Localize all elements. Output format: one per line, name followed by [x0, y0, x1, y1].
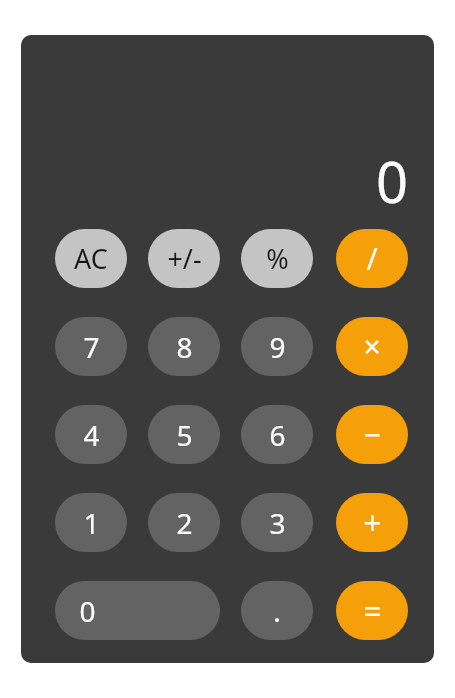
- staticText: 4: [83, 416, 100, 454]
- button[interactable]: Add: [336, 493, 408, 552]
- button[interactable]: 7: [55, 317, 127, 376]
- staticText: %: [266, 240, 289, 277]
- button[interactable]: 1: [55, 493, 127, 552]
- button[interactable]: 0: [55, 581, 220, 640]
- button[interactable]: 8: [148, 317, 220, 376]
- button[interactable]: Decimal point: [241, 581, 313, 640]
- staticText: −: [363, 414, 381, 455]
- button[interactable]: 4: [55, 405, 127, 464]
- button[interactable]: 2: [148, 493, 220, 552]
- staticText: +/-: [167, 240, 202, 277]
- staticText: .: [273, 592, 281, 630]
- staticText: ×: [363, 326, 381, 367]
- button[interactable]: Multiply: [336, 317, 408, 376]
- button[interactable]: Divide: [336, 229, 408, 288]
- button[interactable]: 5: [148, 405, 220, 464]
- staticText: 2: [176, 504, 193, 542]
- staticText: 1: [83, 504, 100, 542]
- button[interactable]: AC: [55, 229, 127, 288]
- button[interactable]: 9: [241, 317, 313, 376]
- staticText: 0: [79, 592, 96, 630]
- staticText: 9: [269, 328, 286, 366]
- staticText: /: [366, 238, 378, 279]
- staticText: 0: [375, 143, 408, 213]
- staticText: 3: [269, 504, 286, 542]
- button[interactable]: Equals: [336, 581, 408, 640]
- staticText: =: [363, 589, 382, 633]
- button[interactable]: 6: [241, 405, 313, 464]
- button[interactable]: 3: [241, 493, 313, 552]
- button[interactable]: +/-: [148, 229, 220, 288]
- staticText: 8: [176, 328, 193, 366]
- staticText: 7: [83, 328, 100, 366]
- staticText: +: [363, 501, 382, 545]
- button[interactable]: Subtract: [336, 405, 408, 464]
- button[interactable]: %: [241, 229, 313, 288]
- staticText: 5: [176, 416, 193, 454]
- staticText: AC: [74, 240, 108, 277]
- staticText: 6: [269, 416, 286, 454]
